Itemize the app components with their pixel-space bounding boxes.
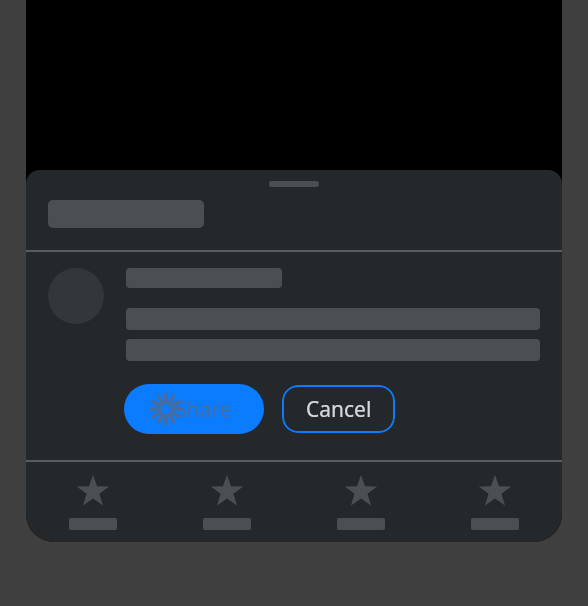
staticText: Cancel <box>306 395 372 424</box>
button[interactable]: Home <box>26 462 160 542</box>
button[interactable]: Profile <box>428 462 562 542</box>
button[interactable]: Search <box>160 462 294 542</box>
button[interactable]: Saved <box>294 462 428 542</box>
button[interactable]: Share <box>124 384 264 434</box>
button[interactable]: Cancel <box>282 385 395 433</box>
staticText: Share <box>175 395 232 424</box>
